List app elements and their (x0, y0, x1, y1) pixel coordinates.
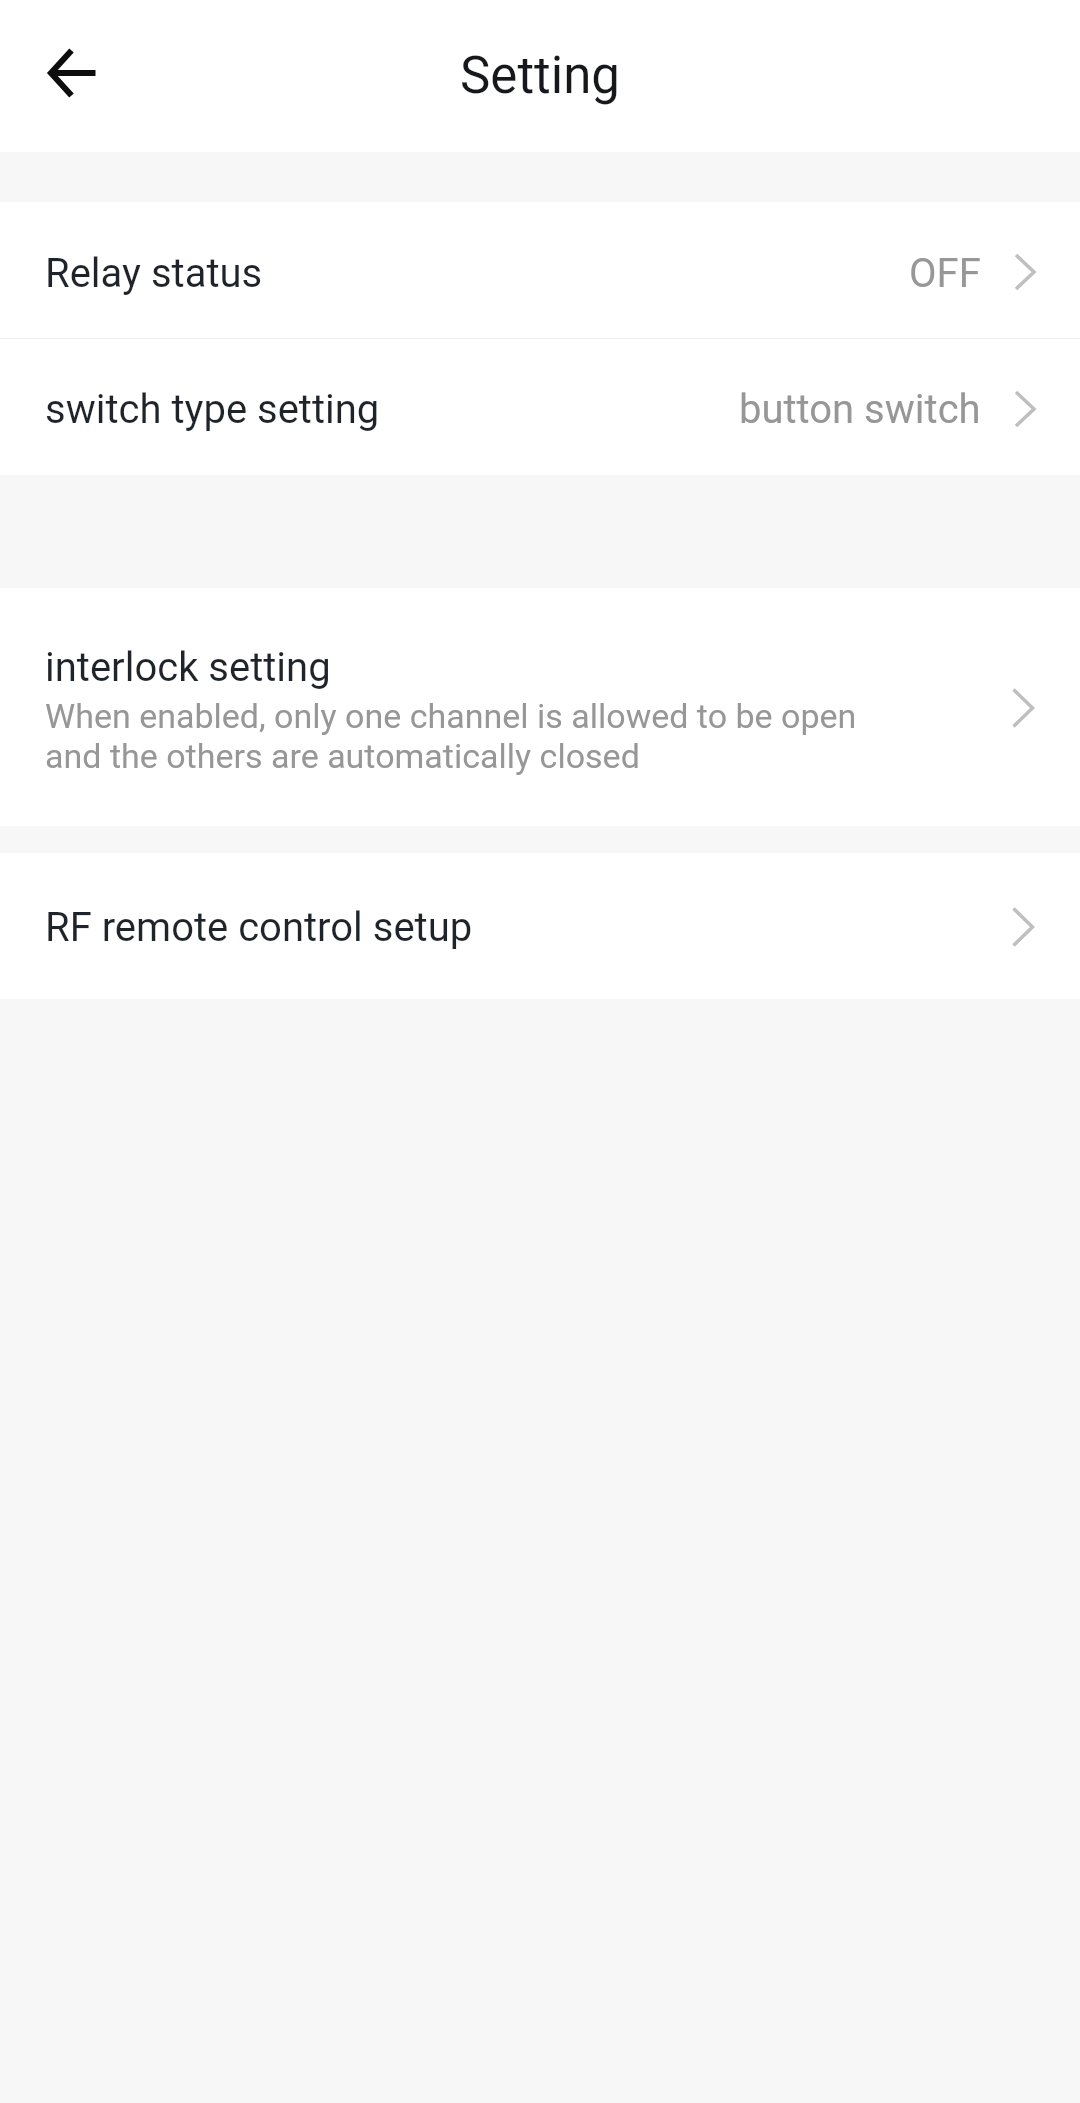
button[interactable]: interlock setting (0, 588, 1080, 826)
staticText: Setting (460, 46, 620, 106)
staticText: RF remote control setup (45, 904, 473, 951)
staticText: and the others are automatically closed (45, 736, 640, 776)
staticText: OFF (909, 250, 981, 297)
button[interactable]: switch type setting (0, 339, 1080, 475)
staticText: interlock setting (45, 644, 331, 691)
button[interactable]: RF remote control setup (0, 853, 1080, 999)
staticText: switch type setting (45, 386, 380, 433)
staticText: Relay status (45, 250, 263, 297)
button[interactable]: Relay status (0, 202, 1080, 338)
staticText: button switch (739, 386, 981, 433)
button[interactable]: Back (24, 28, 120, 124)
staticText: When enabled, only one channel is allowe… (45, 696, 857, 736)
